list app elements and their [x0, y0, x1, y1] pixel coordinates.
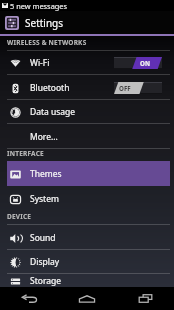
staticText: More... [30, 131, 58, 143]
staticText: WIRELESS & NETWORKS [7, 38, 87, 47]
button[interactable]: Bluetooth [7, 75, 170, 100]
staticText: 5 new messages [10, 1, 68, 11]
button[interactable]: Themes [7, 162, 170, 186]
button[interactable]: Sound [7, 225, 170, 250]
button[interactable]: Back [0, 287, 58, 310]
staticText: Sound [30, 232, 56, 244]
staticText: INTERFACE [7, 149, 44, 158]
staticText: Wi-Fi [30, 57, 50, 69]
button[interactable]: Home [58, 287, 116, 310]
button[interactable]: Wi-Fi [7, 51, 170, 75]
staticText: Storage [30, 275, 62, 287]
staticText: DEVICE [7, 212, 32, 221]
button[interactable]: ON [114, 57, 162, 69]
staticText: Settings [25, 16, 64, 30]
staticText: Data usage [30, 106, 76, 118]
button[interactable]: Display [7, 250, 170, 274]
staticText: Bluetooth [30, 82, 70, 94]
button[interactable]: Data usage [7, 100, 170, 124]
staticText: Themes [30, 168, 62, 180]
staticText: Display [30, 256, 59, 268]
button[interactable]: Settings [0, 11, 174, 34]
button[interactable]: Storage [7, 274, 170, 287]
button[interactable]: More... [7, 124, 170, 149]
button[interactable]: OFF [114, 82, 162, 94]
staticText: ON [140, 59, 150, 67]
button[interactable]: System [7, 186, 170, 211]
staticText: OFF [119, 84, 131, 92]
staticText: System [30, 193, 59, 205]
button[interactable]: Recent apps [116, 287, 174, 310]
